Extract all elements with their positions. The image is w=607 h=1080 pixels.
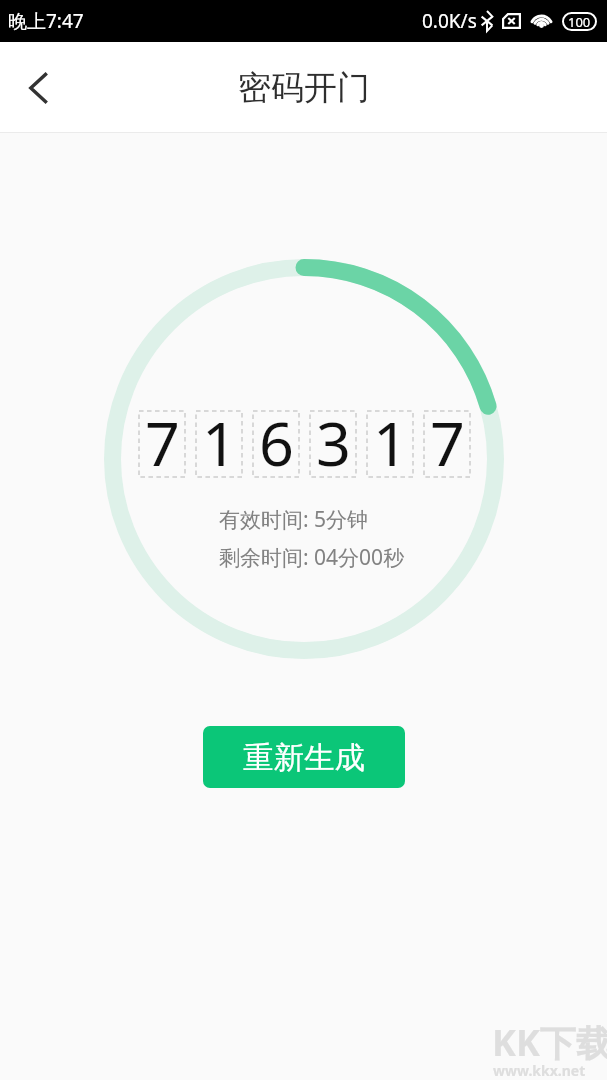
staticText: 晚上7:47 [8, 8, 84, 34]
staticText: 6 [259, 401, 294, 467]
button[interactable]: Back [0, 42, 72, 133]
staticText: 剩余时间: 04分00秒 [219, 543, 405, 572]
staticText: 密码开门 [238, 67, 370, 109]
staticText: 0.0K/s [422, 8, 477, 34]
staticText: 1 [373, 401, 408, 467]
staticText: KK下载 [492, 1018, 607, 1067]
staticText: 100 [568, 13, 591, 31]
staticText: 7 [430, 401, 465, 467]
staticText: 3 [316, 401, 351, 467]
staticText: 7 [145, 401, 180, 467]
button[interactable]: 重新生成 [203, 726, 405, 788]
staticText: www.kkx.net [493, 1061, 586, 1080]
staticText: 重新生成 [243, 739, 365, 777]
staticText: 有效时间: 5分钟 [219, 505, 369, 534]
staticText: 1 [202, 401, 237, 467]
